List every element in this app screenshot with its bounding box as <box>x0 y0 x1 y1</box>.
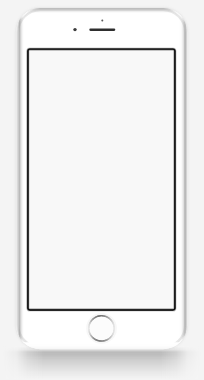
other: Phone mockup <box>0 0 204 380</box>
